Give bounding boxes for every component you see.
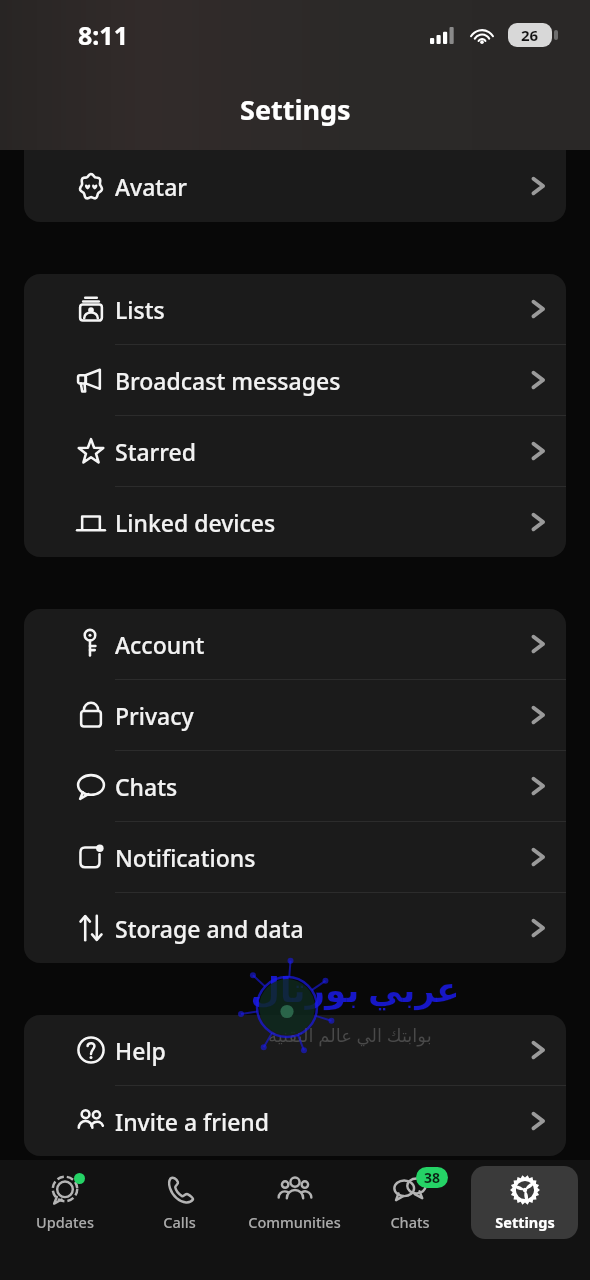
button[interactable]: Notifications bbox=[24, 822, 566, 892]
staticText: Account bbox=[115, 629, 510, 660]
button[interactable]: Storage and data bbox=[24, 893, 566, 963]
staticText: Chats bbox=[390, 1212, 430, 1232]
staticText: Help bbox=[115, 1035, 510, 1066]
staticText: Notifications bbox=[115, 842, 510, 873]
staticText: عربي بورتال bbox=[250, 966, 460, 1012]
button[interactable]: Updates bbox=[12, 1166, 118, 1239]
staticText: Storage and data bbox=[115, 913, 510, 944]
staticText: Invite a friend bbox=[115, 1106, 510, 1137]
staticText: Avatar bbox=[115, 171, 510, 202]
button[interactable]: Calls bbox=[126, 1166, 233, 1239]
staticText: بوابتك الي عالم التقنية bbox=[268, 1023, 432, 1048]
staticText: Updates bbox=[36, 1212, 94, 1232]
button[interactable]: Avatar bbox=[24, 150, 566, 222]
staticText: Starred bbox=[115, 436, 510, 467]
button[interactable]: Settings bbox=[471, 1166, 578, 1239]
button[interactable]: Help bbox=[24, 1015, 566, 1085]
button[interactable]: Invite a friend bbox=[24, 1086, 566, 1156]
button[interactable]: Communities bbox=[241, 1166, 348, 1239]
button[interactable]: Account bbox=[24, 609, 566, 679]
button[interactable]: Starred bbox=[24, 416, 566, 486]
staticText: Settings bbox=[240, 91, 351, 128]
staticText: Calls bbox=[163, 1212, 196, 1232]
button[interactable]: Broadcast messages bbox=[24, 345, 566, 415]
staticText: Privacy bbox=[115, 700, 510, 731]
staticText: 38 bbox=[424, 1168, 441, 1187]
button[interactable]: 38 bbox=[356, 1166, 463, 1239]
staticText: Communities bbox=[248, 1212, 341, 1232]
staticText: Lists bbox=[115, 294, 510, 325]
staticText: Settings bbox=[495, 1212, 555, 1232]
button[interactable]: Privacy bbox=[24, 680, 566, 750]
staticText: 26 bbox=[521, 25, 539, 45]
staticText: Broadcast messages bbox=[115, 365, 510, 396]
button[interactable]: Chats bbox=[24, 751, 566, 821]
staticText: Linked devices bbox=[115, 507, 510, 538]
staticText: 8:11 bbox=[78, 18, 128, 52]
staticText: Chats bbox=[115, 771, 510, 802]
button[interactable]: Lists bbox=[24, 274, 566, 344]
button[interactable]: Linked devices bbox=[24, 487, 566, 557]
